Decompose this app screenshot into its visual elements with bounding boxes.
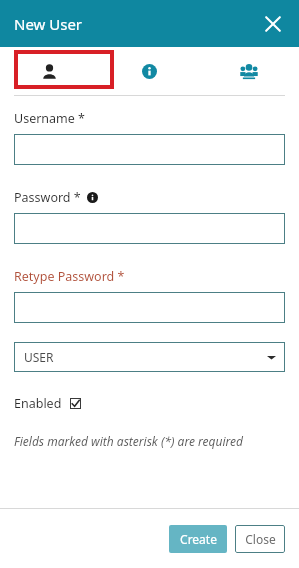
staticText: Close <box>245 531 276 547</box>
staticText: Password * <box>14 189 81 206</box>
button[interactable]: Close <box>257 8 289 40</box>
button[interactable]: User details tab <box>0 47 99 95</box>
button[interactable]: Information tab <box>99 47 199 95</box>
staticText: Username * <box>14 110 85 127</box>
button[interactable] <box>14 292 285 323</box>
button[interactable]: Close <box>235 525 285 553</box>
staticText: USER <box>24 349 54 365</box>
staticText: Fields marked with asterisk (*) are requ… <box>14 433 244 449</box>
button[interactable]: Groups tab <box>199 47 299 95</box>
staticText: Enabled <box>14 395 62 412</box>
button[interactable]: Create <box>169 525 227 553</box>
button[interactable] <box>14 134 285 165</box>
staticText: Retype Password * <box>14 268 125 285</box>
button[interactable] <box>14 213 285 244</box>
staticText: Create <box>180 531 217 547</box>
staticText: New User <box>14 14 83 34</box>
button[interactable]: USER <box>14 342 285 372</box>
button[interactable]: Enabled <box>14 395 81 412</box>
